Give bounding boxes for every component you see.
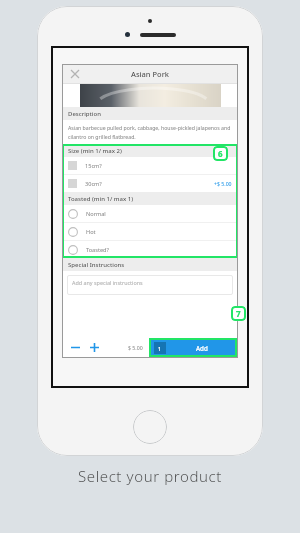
staticText: Asian barbecue pulled pork, cabbage, hou… <box>68 124 231 131</box>
staticText: Normal <box>86 210 106 218</box>
staticText: +$ 5.00 <box>214 180 232 187</box>
button[interactable]: Decrease quantity <box>68 340 82 354</box>
staticText: Toasted (min 1/ max 1) <box>68 195 134 203</box>
staticText: Special Instructions <box>68 261 125 269</box>
button[interactable]: Close <box>68 67 82 81</box>
button[interactable]: Hot <box>62 223 238 240</box>
staticText: cilantro on grilled flatbread. <box>68 133 136 140</box>
staticText: 30cm? <box>85 180 102 188</box>
staticText: $ 5.00 <box>128 344 143 351</box>
staticText: Description <box>68 110 101 118</box>
staticText: Add <box>196 344 208 352</box>
staticText: Add any special instructions <box>72 279 143 286</box>
button[interactable]: Increase quantity <box>87 340 101 354</box>
staticText: 7 <box>236 308 241 319</box>
button[interactable]: 30cm? <box>62 175 238 192</box>
staticText: Select your product <box>78 466 222 486</box>
staticText: 15cm? <box>85 162 102 170</box>
button[interactable]: Add any special instructions <box>67 275 233 295</box>
staticText: 1 <box>158 345 162 352</box>
staticText: Size (min 1/ max 2) <box>68 147 122 155</box>
button[interactable]: 1 <box>149 338 237 357</box>
button[interactable]: 15cm? <box>62 157 238 174</box>
staticText: Hot <box>86 228 96 236</box>
staticText: 6 <box>218 148 223 159</box>
button[interactable]: Normal <box>62 205 238 222</box>
staticText: Asian Pork <box>131 69 170 79</box>
staticText: Toasted? <box>86 246 109 254</box>
button[interactable]: Toasted? <box>62 241 238 258</box>
